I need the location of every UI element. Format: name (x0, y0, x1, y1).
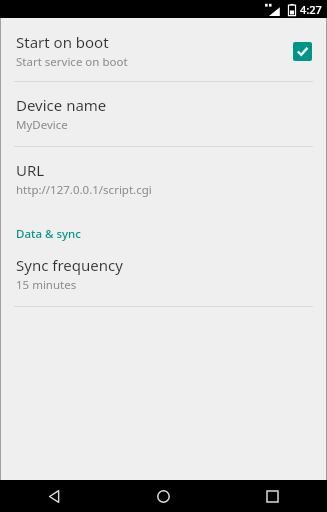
button[interactable]: Device name (0, 82, 327, 146)
staticText: http://127.0.0.1/script.cgi (16, 182, 152, 198)
staticText: Sync frequency (16, 255, 123, 275)
button[interactable]: Back (0, 480, 109, 512)
staticText: Start on boot (16, 32, 109, 52)
staticText: URL (16, 160, 45, 180)
staticText: Start service on boot (16, 54, 128, 70)
button[interactable]: Recent apps (218, 480, 327, 512)
staticText: 15 minutes (16, 277, 77, 293)
button[interactable]: Start on boot, enabled (293, 42, 312, 61)
button[interactable]: Data & sync (0, 224, 327, 249)
button[interactable]: Sync frequency (0, 249, 327, 306)
button[interactable]: Home (109, 480, 218, 512)
staticText: MyDevice (16, 117, 68, 133)
staticText: Data & sync (16, 226, 81, 242)
staticText: 4:27 (300, 2, 322, 17)
staticText: Device name (16, 95, 107, 115)
button[interactable]: URL (0, 147, 327, 211)
button[interactable]: Start on boot (0, 23, 327, 81)
